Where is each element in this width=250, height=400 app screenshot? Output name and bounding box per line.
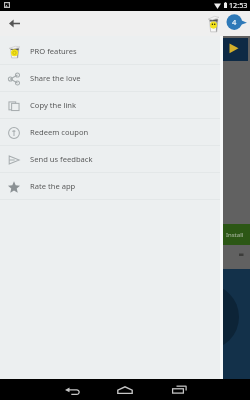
staticText: Share the love xyxy=(30,73,81,83)
button[interactable]: Notifications, 4 new xyxy=(224,12,250,32)
staticText: Install xyxy=(226,231,244,239)
button[interactable]: Recent apps xyxy=(161,379,197,400)
button[interactable]: Rate the app xyxy=(0,173,223,200)
staticText: Copy the link xyxy=(30,100,77,110)
button[interactable]: Send us feedback xyxy=(0,146,223,173)
button[interactable]: Share the love xyxy=(0,65,223,92)
button[interactable]: Navigate up xyxy=(2,11,26,35)
staticText: 12:53 xyxy=(229,0,248,10)
button[interactable]: Back xyxy=(54,379,90,400)
staticText: 4 xyxy=(232,17,237,27)
staticText: Redeem coupon xyxy=(30,127,89,137)
button[interactable]: Delete xyxy=(204,12,222,35)
button[interactable]: Redeem coupon xyxy=(0,119,223,146)
button[interactable]: Home xyxy=(107,379,143,400)
button[interactable]: Install xyxy=(223,224,250,245)
staticText: PRO features xyxy=(30,46,77,56)
button[interactable]: PRO features xyxy=(0,38,223,65)
staticText: Send us feedback xyxy=(30,154,93,164)
button[interactable]: Copy the link xyxy=(0,92,223,119)
staticText: Rate the app xyxy=(30,181,76,191)
